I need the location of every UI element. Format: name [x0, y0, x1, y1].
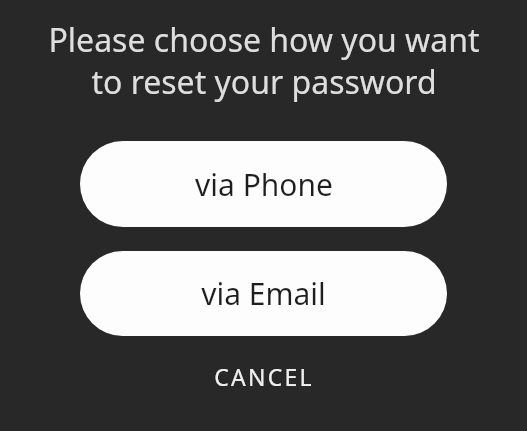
staticText: CANCEL — [214, 361, 314, 392]
staticText: Please choose how you want to reset your… — [48, 18, 480, 103]
staticText: via Email — [201, 273, 326, 314]
button[interactable]: via Email — [80, 251, 447, 336]
button[interactable]: via Phone — [80, 141, 447, 227]
button[interactable]: CANCEL — [0, 354, 527, 398]
staticText: via Phone — [195, 164, 333, 205]
